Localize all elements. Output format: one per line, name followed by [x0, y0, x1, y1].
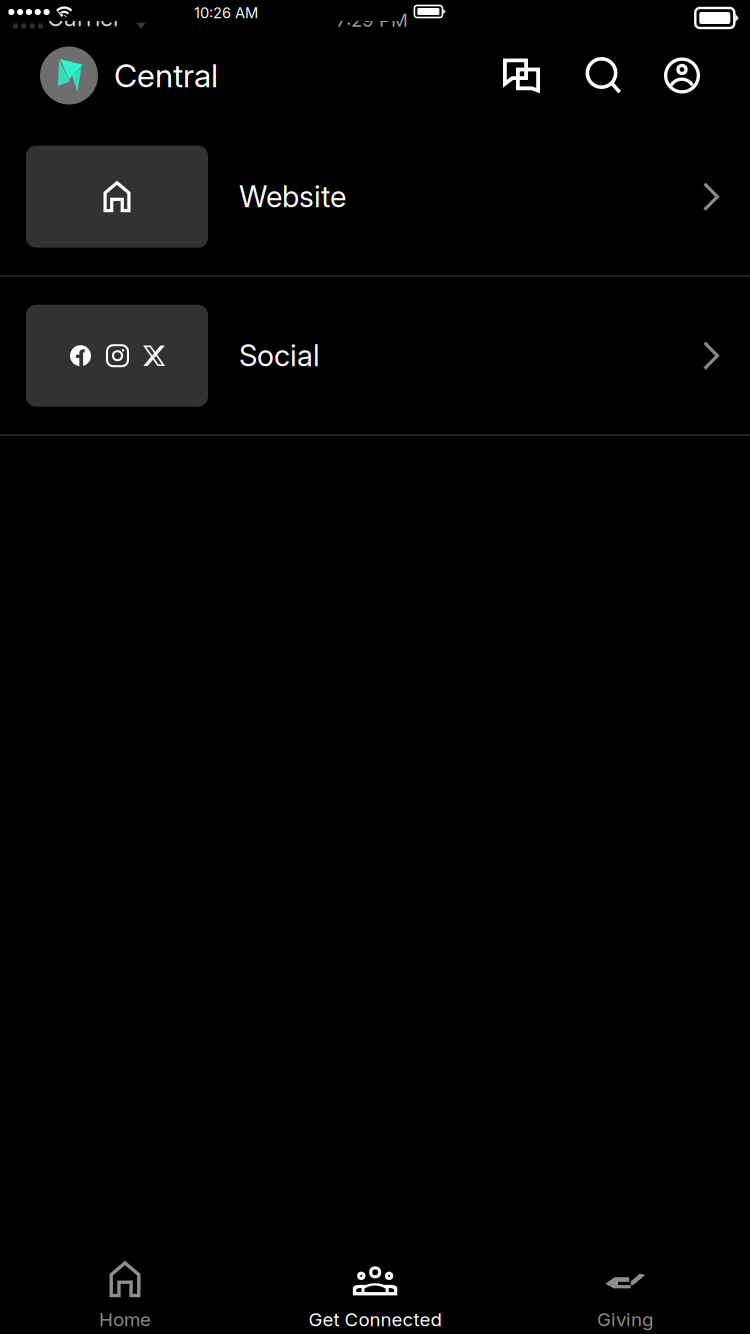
- staticText: 10:26 AM: [194, 4, 258, 22]
- button[interactable]: Home: [0, 1254, 250, 1334]
- staticText: Social: [239, 338, 320, 373]
- staticText: Carrier: [47, 4, 121, 32]
- button[interactable]: Social: [0, 277, 750, 436]
- button[interactable]: Giving: [500, 1254, 750, 1334]
- staticText: Central: [114, 56, 218, 95]
- staticText: Get Connected: [308, 1308, 441, 1331]
- staticText: 7:29 PM: [336, 9, 408, 31]
- button[interactable]: Central: [0, 36, 234, 115]
- button[interactable]: Messages: [479, 36, 564, 115]
- button[interactable]: Website: [0, 118, 750, 277]
- staticText: Giving: [597, 1308, 653, 1331]
- staticText: Website: [239, 179, 346, 214]
- button[interactable]: Get Connected: [250, 1254, 500, 1334]
- button[interactable]: Account: [643, 36, 721, 115]
- staticText: Home: [99, 1308, 151, 1331]
- button[interactable]: Search: [564, 36, 643, 115]
